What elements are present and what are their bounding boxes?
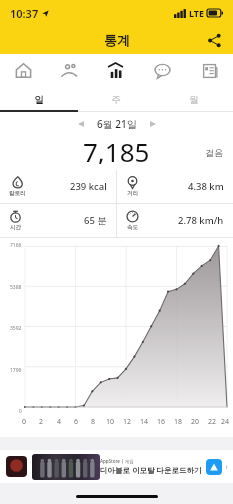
button[interactable]: 일 [0, 87, 77, 112]
button[interactable]: Previous day [73, 116, 89, 132]
staticText: 22 [208, 417, 217, 427]
staticText: 주 [111, 94, 121, 106]
staticText: 16 [157, 417, 166, 427]
button[interactable]: 칼로리 [0, 170, 116, 203]
button[interactable]: Share [201, 27, 227, 53]
staticText: 10 [106, 417, 115, 427]
button[interactable]: 시간 [0, 204, 116, 237]
staticText: 걸음 [205, 147, 223, 158]
staticText: 3592 [10, 325, 22, 332]
staticText: 0 [19, 408, 22, 415]
button[interactable]: Statistics [92, 54, 139, 87]
staticText: 65 분 [84, 214, 107, 227]
staticText: 4.38 km [188, 180, 224, 193]
staticText: 14 [140, 417, 149, 427]
staticText: 4 [57, 417, 62, 427]
staticText: 1796 [10, 367, 22, 374]
staticText: 거리 [127, 190, 138, 197]
staticText: 5388 [10, 284, 22, 291]
staticText: 월 [189, 94, 199, 106]
staticText: 일 [34, 94, 44, 106]
staticText: 10:37 [10, 6, 39, 21]
button[interactable]: Friends [46, 54, 92, 87]
staticText: 디아블로 이모탈 다운로드하기 [100, 465, 202, 475]
staticText: 24 [221, 417, 230, 427]
button[interactable]: 월 [155, 87, 233, 112]
staticText: 칼로리 [9, 190, 26, 197]
button[interactable]: Chat [139, 54, 186, 87]
button[interactable]: 속도 [117, 204, 233, 237]
staticText: 6 [74, 417, 79, 427]
staticText: 2 [39, 417, 44, 427]
button[interactable]: News [186, 54, 233, 87]
staticText: i [226, 463, 227, 471]
staticText: 속도 [127, 224, 138, 231]
staticText: 12 [123, 417, 132, 427]
staticText: 통계 [104, 32, 130, 48]
button[interactable]: 거리 [117, 170, 233, 203]
staticText: 18 [174, 417, 183, 427]
staticText: 8 [91, 417, 96, 427]
staticText: AppStore | 게임 [100, 458, 134, 464]
staticText: 시간 [10, 224, 21, 231]
staticText: 0 [22, 417, 27, 427]
staticText: 239 kcal [70, 180, 107, 193]
button[interactable]: Next day [145, 116, 161, 132]
button[interactable]: 주 [77, 87, 155, 112]
staticText: LTE [189, 7, 205, 19]
button[interactable]: AppStore | 게임 [6, 450, 227, 483]
staticText: 7166 [10, 242, 22, 249]
staticText: 2.78 km/h [178, 214, 224, 227]
staticText: 6월 21일 [97, 117, 137, 131]
staticText: 7,185 [83, 134, 150, 164]
button[interactable]: Ad info [226, 461, 227, 473]
button[interactable]: Home [0, 54, 46, 87]
staticText: 20 [191, 417, 200, 427]
